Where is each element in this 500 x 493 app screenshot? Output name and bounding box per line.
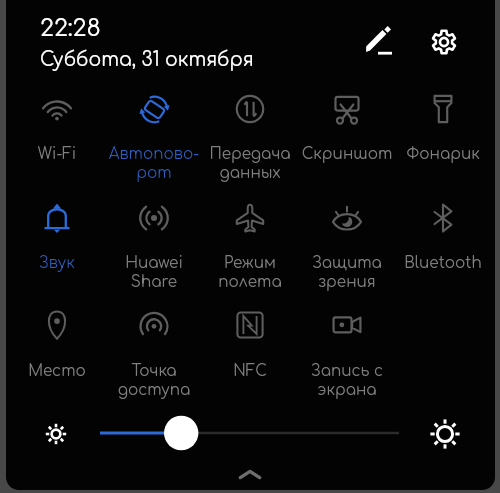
staticText: Суббота, 31 октября	[40, 49, 254, 70]
staticText: Автопово- рот	[106, 146, 202, 181]
staticText: Передача данных	[202, 146, 298, 181]
button[interactable]: Bluetooth	[395, 194, 491, 290]
button[interactable]: Wi-Fi	[9, 85, 105, 181]
staticText: Точка доступа	[106, 363, 202, 398]
staticText: NFC	[202, 363, 298, 380]
button[interactable]: Скриншот	[299, 85, 395, 181]
staticText: Huawei Share	[106, 255, 202, 290]
button[interactable]: Settings	[426, 24, 462, 60]
staticText: Wi-Fi	[9, 146, 105, 163]
button[interactable]: NFC	[202, 301, 298, 397]
button[interactable]: Передача данных	[202, 85, 298, 181]
button[interactable]: Increase brightness	[426, 415, 463, 452]
button[interactable]: Brightness slider	[92, 416, 412, 450]
staticText: Режим полета	[202, 255, 298, 290]
button[interactable]: Место	[9, 301, 105, 397]
button[interactable]: Huawei Share	[106, 194, 202, 290]
staticText: Фонарик	[395, 146, 491, 163]
staticText: 22:28	[40, 15, 101, 42]
staticText: Bluetooth	[395, 255, 491, 272]
staticText: Запись с экрана	[299, 363, 395, 398]
button[interactable]: Точка доступа	[106, 301, 202, 397]
button[interactable]: Collapse panel	[230, 463, 270, 485]
staticText: Место	[9, 363, 105, 380]
staticText: Защита зрения	[299, 255, 395, 290]
button[interactable]: Edit quick settings	[360, 24, 396, 60]
staticText: Звук	[9, 255, 105, 272]
button[interactable]: Звук	[9, 194, 105, 290]
button[interactable]: Режим полета	[202, 194, 298, 290]
button[interactable]: Фонарик	[395, 85, 491, 181]
button[interactable]: Автопово- рот	[106, 85, 202, 181]
staticText: Скриншот	[299, 146, 395, 163]
button[interactable]: Запись с экрана	[299, 301, 395, 397]
button[interactable]: Защита зрения	[299, 194, 395, 290]
button[interactable]: Decrease brightness	[37, 415, 74, 452]
